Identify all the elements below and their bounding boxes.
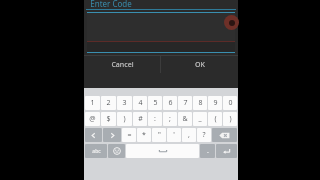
staticText: $	[106, 114, 111, 124]
button[interactable]: ;	[163, 112, 177, 126]
staticText: @	[89, 114, 96, 124]
button[interactable]: &	[178, 112, 192, 126]
staticText: OK	[195, 60, 205, 70]
staticText: *	[142, 130, 146, 140]
staticText: Enter Code	[90, 0, 132, 7]
button[interactable]: 7	[178, 96, 192, 110]
button[interactable]: (	[208, 112, 222, 126]
button[interactable]	[87, 13, 235, 41]
staticText: _	[198, 114, 202, 124]
staticText: .	[207, 146, 209, 156]
staticText: 0	[228, 98, 233, 108]
staticText: ,	[188, 130, 190, 140]
staticText: ;	[169, 114, 171, 124]
staticText: 1	[90, 98, 95, 108]
staticText: (	[214, 114, 217, 124]
button[interactable]: '	[167, 128, 181, 142]
button[interactable]: 5	[148, 96, 162, 110]
button[interactable]: )	[223, 112, 237, 126]
button[interactable]: _	[193, 112, 207, 126]
button[interactable]: Record	[224, 15, 239, 30]
button[interactable]: #	[133, 112, 147, 126]
button[interactable]: 3	[117, 96, 132, 110]
staticText: =	[127, 130, 132, 140]
staticText: Cancel	[111, 60, 134, 70]
button[interactable]: Next page	[103, 128, 121, 142]
button[interactable]: $	[101, 112, 116, 126]
button[interactable]: Backspace	[212, 128, 237, 142]
button[interactable]: Cancel	[84, 56, 160, 73]
staticText: 7	[183, 98, 188, 108]
button[interactable]: Enter	[216, 144, 237, 158]
staticText: 3	[122, 98, 127, 108]
staticText: ?	[202, 130, 206, 140]
staticText: )	[229, 114, 232, 124]
staticText: #	[138, 114, 143, 124]
staticText: abc	[92, 148, 101, 155]
button[interactable]: ,	[182, 128, 196, 142]
button[interactable]: )	[117, 112, 132, 126]
staticText: "	[158, 130, 161, 140]
staticText: 9	[213, 98, 218, 108]
button[interactable]: "	[152, 128, 166, 142]
button[interactable]: ?	[197, 128, 211, 142]
button[interactable]: Emoji	[108, 144, 125, 158]
button[interactable]: 0	[223, 96, 237, 110]
staticText: 2	[106, 98, 111, 108]
staticText: )	[123, 114, 126, 124]
staticText: 8	[198, 98, 203, 108]
button[interactable]: 2	[101, 96, 116, 110]
staticText: 4	[138, 98, 143, 108]
button[interactable]: 9	[208, 96, 222, 110]
button[interactable]: =	[122, 128, 136, 142]
button[interactable]: @	[85, 112, 100, 126]
button[interactable]: Space	[126, 144, 199, 158]
button[interactable]: abc	[85, 144, 107, 158]
button[interactable]: 8	[193, 96, 207, 110]
button[interactable]: *	[137, 128, 151, 142]
staticText: :	[154, 114, 156, 124]
staticText: 6	[168, 98, 173, 108]
button[interactable]: 1	[85, 96, 100, 110]
button[interactable]: :	[148, 112, 162, 126]
staticText: 5	[153, 98, 158, 108]
button[interactable]: .	[200, 144, 215, 158]
button[interactable]: Previous page	[85, 128, 102, 142]
button[interactable]: 6	[163, 96, 177, 110]
staticText: &	[182, 114, 188, 124]
button[interactable]: OK	[161, 56, 238, 73]
button[interactable]: 4	[133, 96, 147, 110]
staticText: '	[173, 130, 175, 140]
